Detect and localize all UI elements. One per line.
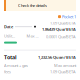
- staticText: 1.09 Qua/BETA: [50, 69, 76, 74]
- staticText: Max Use: [26, 33, 38, 39]
- staticText: 0.0001 Qua/BETA: [46, 34, 76, 39]
- staticText: Pocket 1: [62, 14, 76, 19]
- staticText: Total: [4, 54, 17, 61]
- staticText: Amount + gas: [4, 63, 28, 68]
- staticText: 1,232.56 Quan/BETA: [38, 54, 76, 60]
- button[interactable]: Check the details: [4, 0, 76, 11]
- staticText: Max amount: [54, 63, 76, 68]
- staticText: Date: [4, 24, 13, 29]
- staticText: 1.86439 Qua/BETA: [42, 27, 76, 32]
- staticText: Check the details: [18, 3, 47, 8]
- staticText: fees: [4, 69, 11, 74]
- staticText: Utility ID: 88: [4, 33, 15, 39]
- staticText: 1.09 Qua/BETA: [50, 20, 76, 26]
- button[interactable]: Pocket 1: [58, 14, 76, 19]
